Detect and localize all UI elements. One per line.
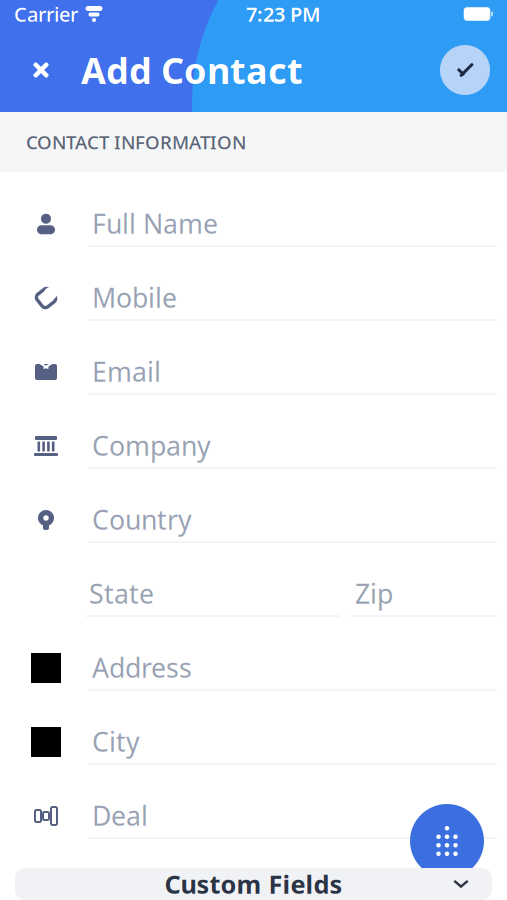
- staticText: Add Contact: [81, 46, 303, 94]
- button[interactable]: Address: [0, 631, 507, 705]
- button[interactable]: Close: [19, 48, 63, 92]
- button[interactable]: Company: [0, 409, 507, 483]
- staticText: 7:23 PM: [246, 1, 321, 27]
- staticText: State: [89, 576, 154, 611]
- staticText: Address: [92, 650, 192, 685]
- button[interactable]: Custom Fields: [15, 868, 492, 900]
- staticText: CONTACT INFORMATION: [26, 130, 246, 154]
- button[interactable]: Country: [0, 483, 507, 557]
- button[interactable]: More fields: [410, 804, 484, 878]
- staticText: Custom Fields: [164, 867, 342, 900]
- staticText: Mobile: [92, 280, 177, 315]
- staticText: City: [92, 724, 140, 759]
- button[interactable]: State: [85, 557, 340, 631]
- staticText: Email: [92, 354, 161, 389]
- staticText: Zip: [355, 576, 393, 611]
- button[interactable]: Email: [0, 335, 507, 409]
- button[interactable]: Save contact: [440, 45, 490, 95]
- staticText: Deal: [92, 798, 148, 833]
- button[interactable]: Deal: [0, 779, 507, 853]
- staticText: Company: [92, 428, 211, 463]
- button[interactable]: City: [0, 705, 507, 779]
- button[interactable]: Zip: [351, 557, 497, 631]
- staticText: Full Name: [92, 206, 218, 241]
- button[interactable]: Full Name: [0, 187, 507, 261]
- staticText: Carrier: [14, 1, 78, 27]
- staticText: Country: [92, 502, 192, 537]
- button[interactable]: Mobile: [0, 261, 507, 335]
